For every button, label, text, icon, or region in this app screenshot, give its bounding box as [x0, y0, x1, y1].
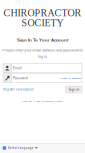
staticText: CHIROPRACTOR: [3, 7, 81, 19]
button[interactable]: Register new account: [3, 88, 34, 91]
staticText: Password: [13, 76, 28, 80]
staticText: Please enter your email address and pass…: [2, 48, 83, 59]
staticText: Copyright © 2018 Chiropractor Society: [22, 100, 63, 102]
staticText: SOCIETY: [21, 17, 63, 29]
staticText: Forgot my password: [60, 77, 81, 79]
staticText: Email: [13, 66, 22, 70]
staticText: Sign In To Your Account: [17, 38, 68, 42]
button[interactable]: Sign In: [66, 86, 82, 93]
button[interactable]: Select Language: [0, 145, 40, 151]
staticText: Register new account: [3, 88, 34, 91]
staticText: Sign In: [68, 88, 79, 91]
staticText: Select Language: [8, 146, 34, 149]
